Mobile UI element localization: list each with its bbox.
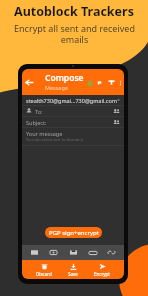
- staticText: Discard: [36, 271, 52, 277]
- staticText: Message: [45, 84, 68, 91]
- button[interactable]: Subject:: [22, 117, 124, 127]
- button[interactable]: Attachment: [95, 77, 106, 88]
- button[interactable]: Insert picture: [47, 246, 60, 259]
- staticText: Encrypt all sent and received emails: [14, 22, 135, 45]
- button[interactable]: Attach file: [105, 246, 118, 259]
- staticText: PGP sign+encrypt: [49, 229, 99, 237]
- button[interactable]: Save draft: [67, 246, 80, 259]
- button[interactable]: Save: [66, 263, 80, 277]
- staticText: Subject:: [26, 119, 47, 126]
- button[interactable]: Encrypt: [92, 263, 112, 277]
- staticText: Save: [68, 271, 78, 277]
- staticText: You can select text to format it: [26, 137, 84, 142]
- button[interactable]: Your message: [22, 128, 124, 142]
- button[interactable]: PGP sign+encrypt: [45, 227, 102, 238]
- staticText: Your message: [26, 130, 63, 137]
- button[interactable]: Insert photo: [28, 246, 41, 259]
- button[interactable]: More options: [117, 78, 124, 87]
- button[interactable]: Add contact: [112, 107, 120, 115]
- button[interactable]: stealth730@gmai...730@gmail.com: [22, 95, 124, 105]
- button[interactable]: Encryption enabled: [84, 77, 95, 88]
- staticText: Autoblock Trackers: [14, 3, 134, 20]
- staticText: stealth730@gmai...730@gmail.com: [26, 97, 117, 104]
- button[interactable]: Formatting: [106, 77, 117, 88]
- button[interactable]: To:: [22, 106, 124, 116]
- staticText: To:: [35, 108, 43, 115]
- button[interactable]: Insert signature: [86, 246, 99, 259]
- button[interactable]: Add recipients: [112, 118, 120, 126]
- button[interactable]: Discard: [34, 263, 54, 277]
- staticText: Compose: [45, 72, 84, 84]
- staticText: Encrypt: [94, 271, 110, 277]
- button[interactable]: Back: [23, 76, 36, 89]
